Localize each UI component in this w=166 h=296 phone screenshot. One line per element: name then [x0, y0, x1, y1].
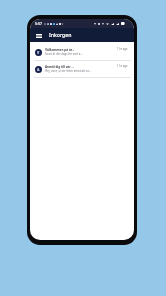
staticText: Hej, vore, vi ser fram emot att se... — [45, 69, 92, 73]
button[interactable]: Open navigation menu — [34, 31, 43, 40]
button[interactable]: V — [30, 44, 134, 61]
staticText: Inkorgen — [49, 32, 72, 39]
staticText: Välkommen på år... — [45, 48, 75, 52]
staticText: 1 hr ago — [117, 64, 128, 68]
staticText: Snart är det dags för vårt å... — [45, 52, 83, 56]
staticText: 5:57 — [35, 21, 43, 26]
staticText: 1 hr ago — [117, 47, 128, 51]
staticText: V — [37, 50, 40, 55]
staticText: A — [37, 67, 40, 72]
button[interactable]: A — [30, 61, 134, 78]
staticText: Anmäl dig till vår ... — [45, 65, 74, 69]
